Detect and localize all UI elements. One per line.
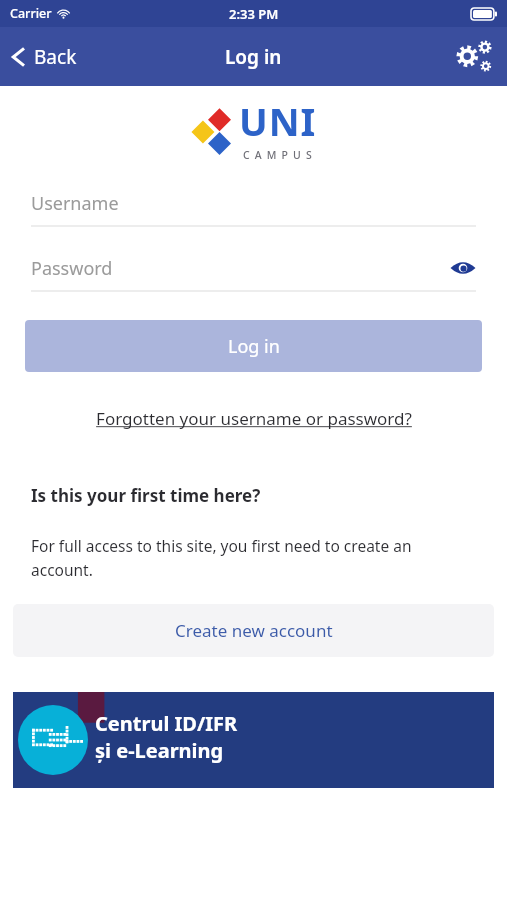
staticText: Is this your first time here?: [31, 484, 261, 507]
staticText: Back: [34, 44, 77, 70]
button[interactable]: Back: [0, 36, 91, 78]
button[interactable]: Create new account: [13, 604, 494, 657]
button[interactable]: Centrul ID/IFR: [13, 692, 494, 788]
staticText: Centrul ID/IFR: [95, 710, 238, 737]
staticText: C A M P U S: [243, 148, 313, 162]
button[interactable]: Password: [0, 252, 507, 292]
staticText: Create new account: [175, 619, 333, 642]
staticText: Log in: [225, 44, 282, 70]
staticText: și e-Learning: [95, 737, 224, 764]
staticText: Password: [31, 256, 113, 281]
staticText: Carrier: [10, 5, 52, 22]
button[interactable]: Username: [0, 187, 507, 227]
other: Show password: [450, 260, 476, 276]
staticText: Username: [31, 191, 119, 216]
staticText: 2:33 PM: [229, 5, 279, 23]
staticText: Log in: [228, 334, 280, 359]
button[interactable]: Forgotten your username or password?: [92, 403, 416, 434]
staticText: UNI: [239, 95, 317, 147]
button[interactable]: Log in: [25, 320, 482, 372]
staticText: For full access to this site, you first …: [31, 535, 467, 580]
button[interactable]: Settings: [441, 30, 507, 84]
